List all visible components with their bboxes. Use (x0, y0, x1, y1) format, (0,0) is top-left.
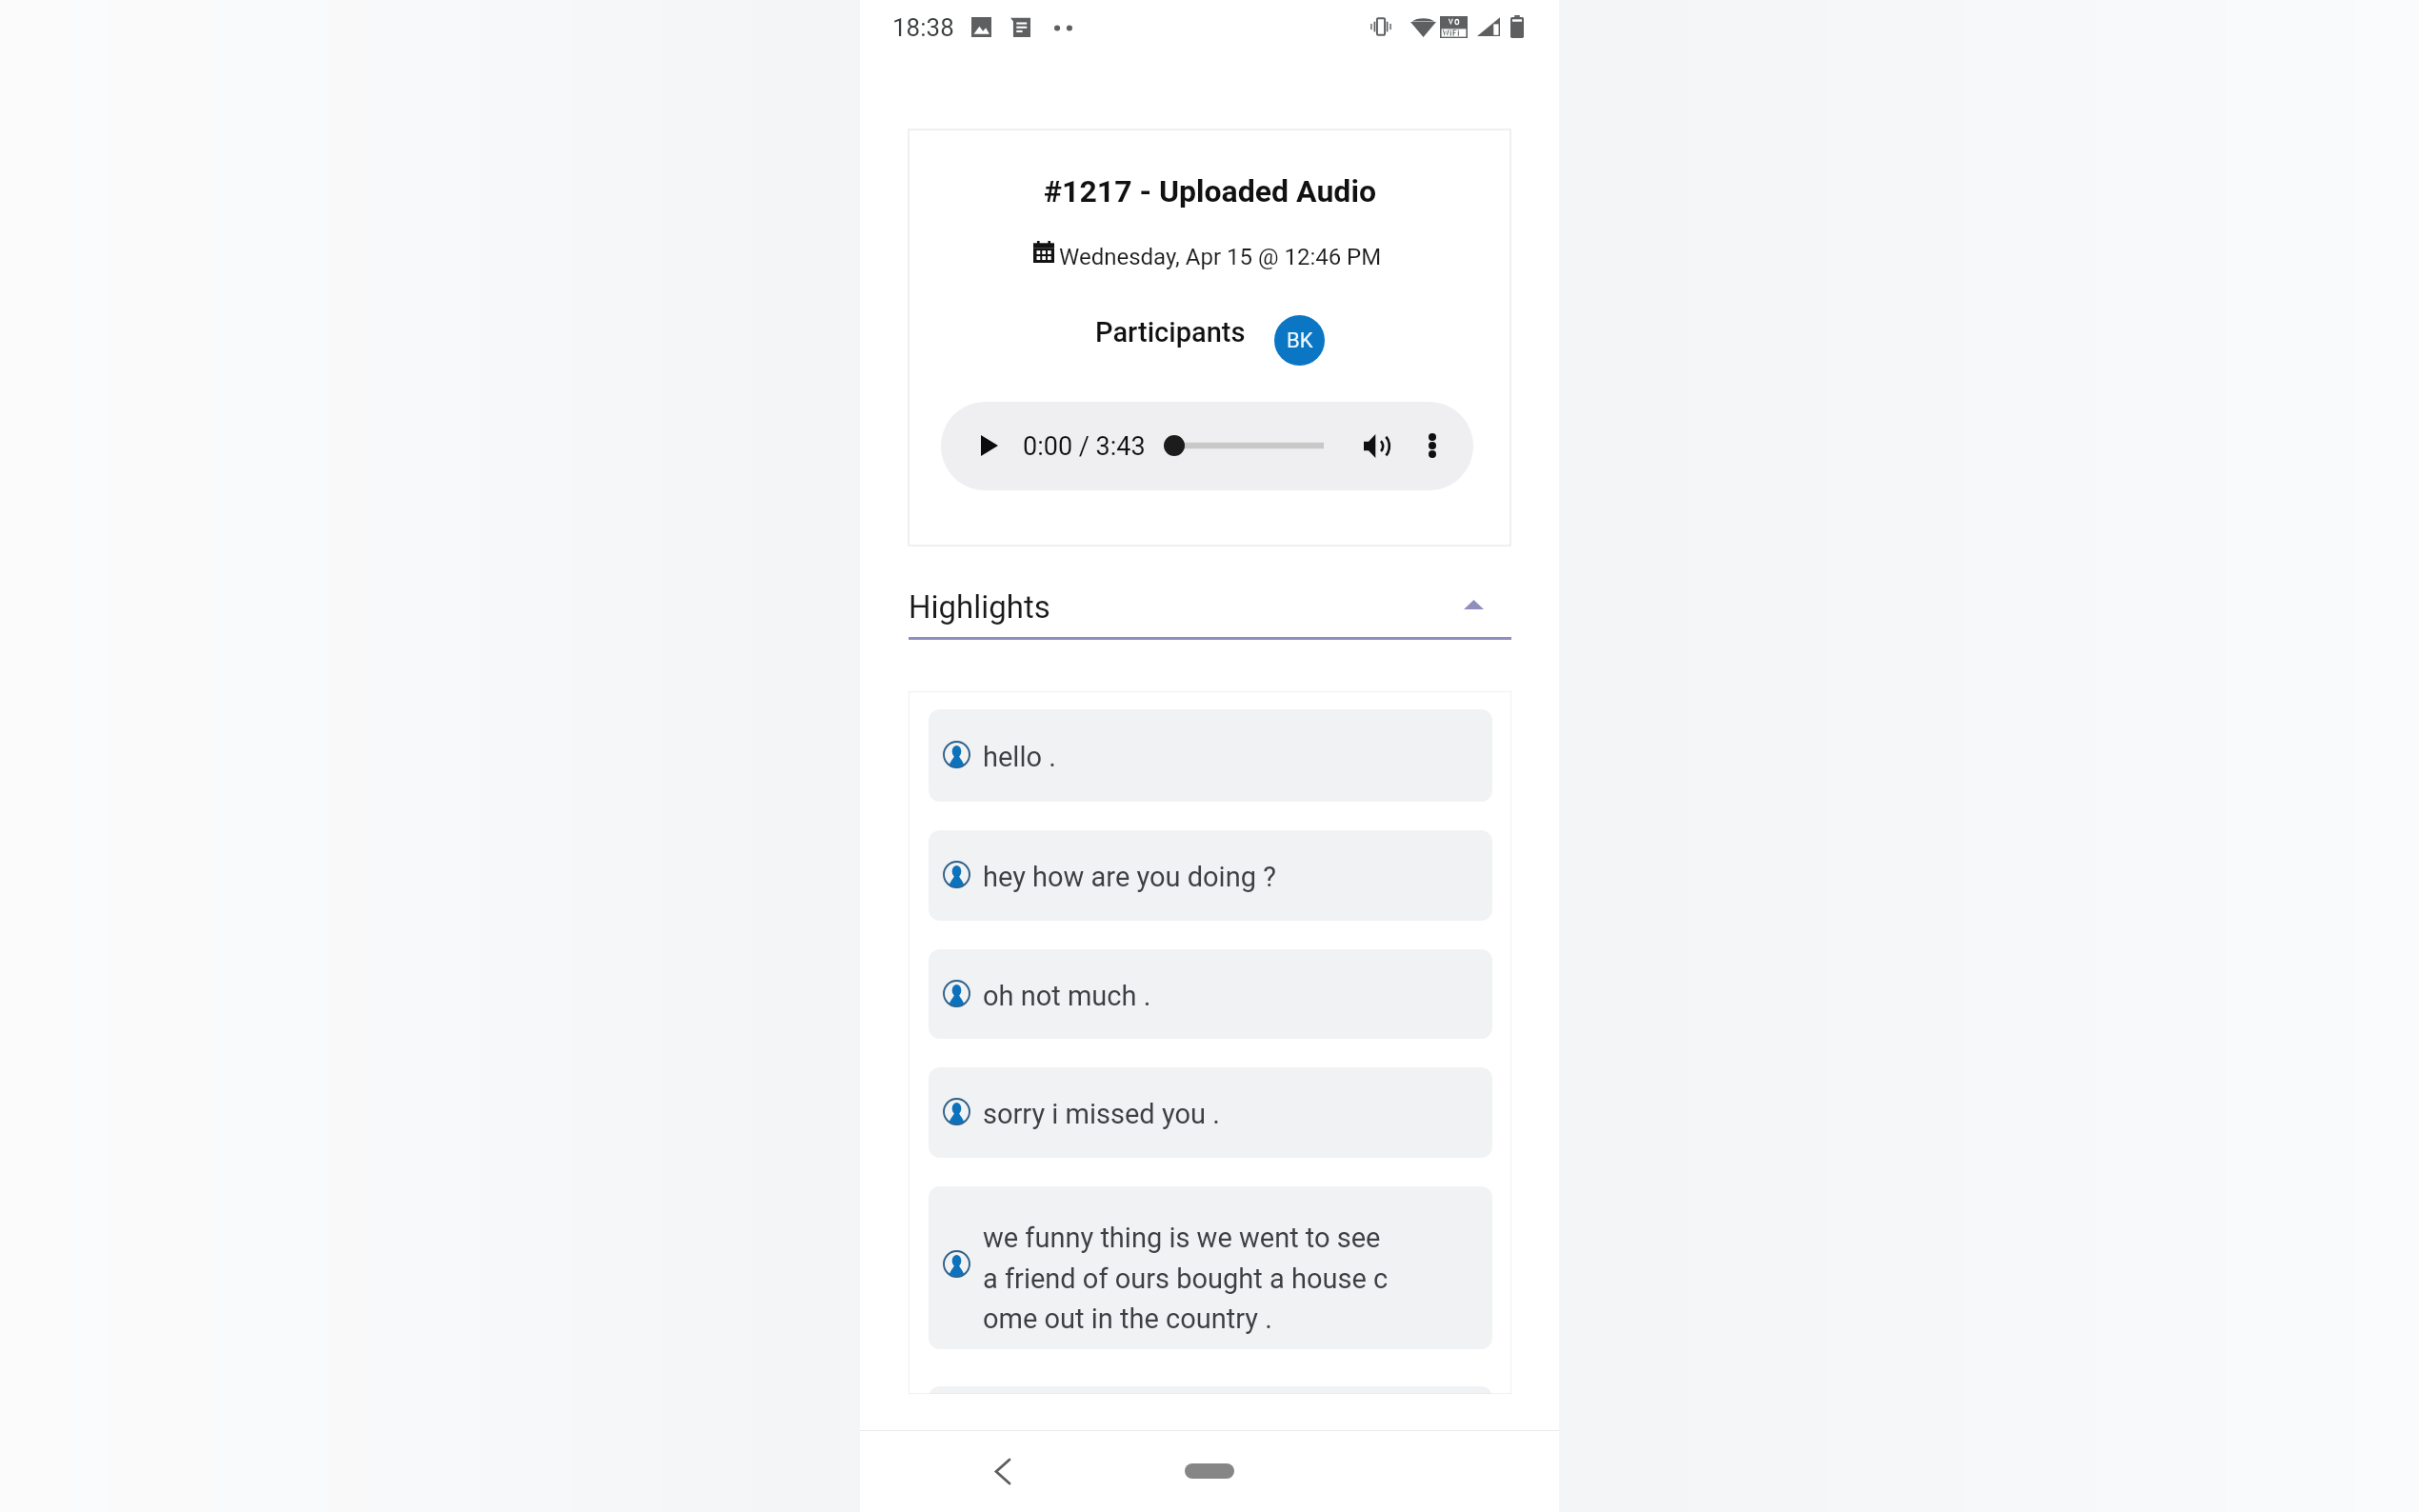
button[interactable] (929, 1067, 1492, 1158)
staticText: 0:00 / 3:43 (1023, 431, 1146, 462)
button[interactable] (929, 1186, 1492, 1349)
staticText: hello . (983, 741, 1056, 773)
button[interactable] (929, 830, 1492, 921)
staticText: hey how are you doing ? (983, 861, 1276, 893)
staticText: BK (1287, 328, 1313, 353)
staticText: #1217 - Uploaded Audio (1044, 173, 1376, 209)
button[interactable]: BK (1274, 315, 1325, 366)
staticText: Wednesday, Apr 15 @ 12:46 PM (1059, 244, 1382, 270)
staticText: we funny thing is we went to see a frien… (983, 1222, 1389, 1335)
button[interactable]: Mute (1362, 431, 1392, 461)
button[interactable]: Back (981, 1449, 1025, 1493)
button[interactable] (929, 1386, 1492, 1394)
staticText: Highlights (909, 588, 1050, 626)
staticText: sorry i missed you . (983, 1098, 1220, 1130)
staticText: oh not much . (983, 980, 1151, 1012)
button[interactable]: More options (1423, 427, 1442, 465)
button[interactable]: Home (1185, 1463, 1234, 1479)
staticText: 18:38 (892, 13, 954, 42)
staticText: Participants (1095, 316, 1246, 348)
button[interactable]: Highlights (909, 571, 1511, 641)
button[interactable]: Play (971, 426, 1008, 466)
button[interactable] (929, 949, 1492, 1039)
button[interactable] (929, 709, 1492, 802)
